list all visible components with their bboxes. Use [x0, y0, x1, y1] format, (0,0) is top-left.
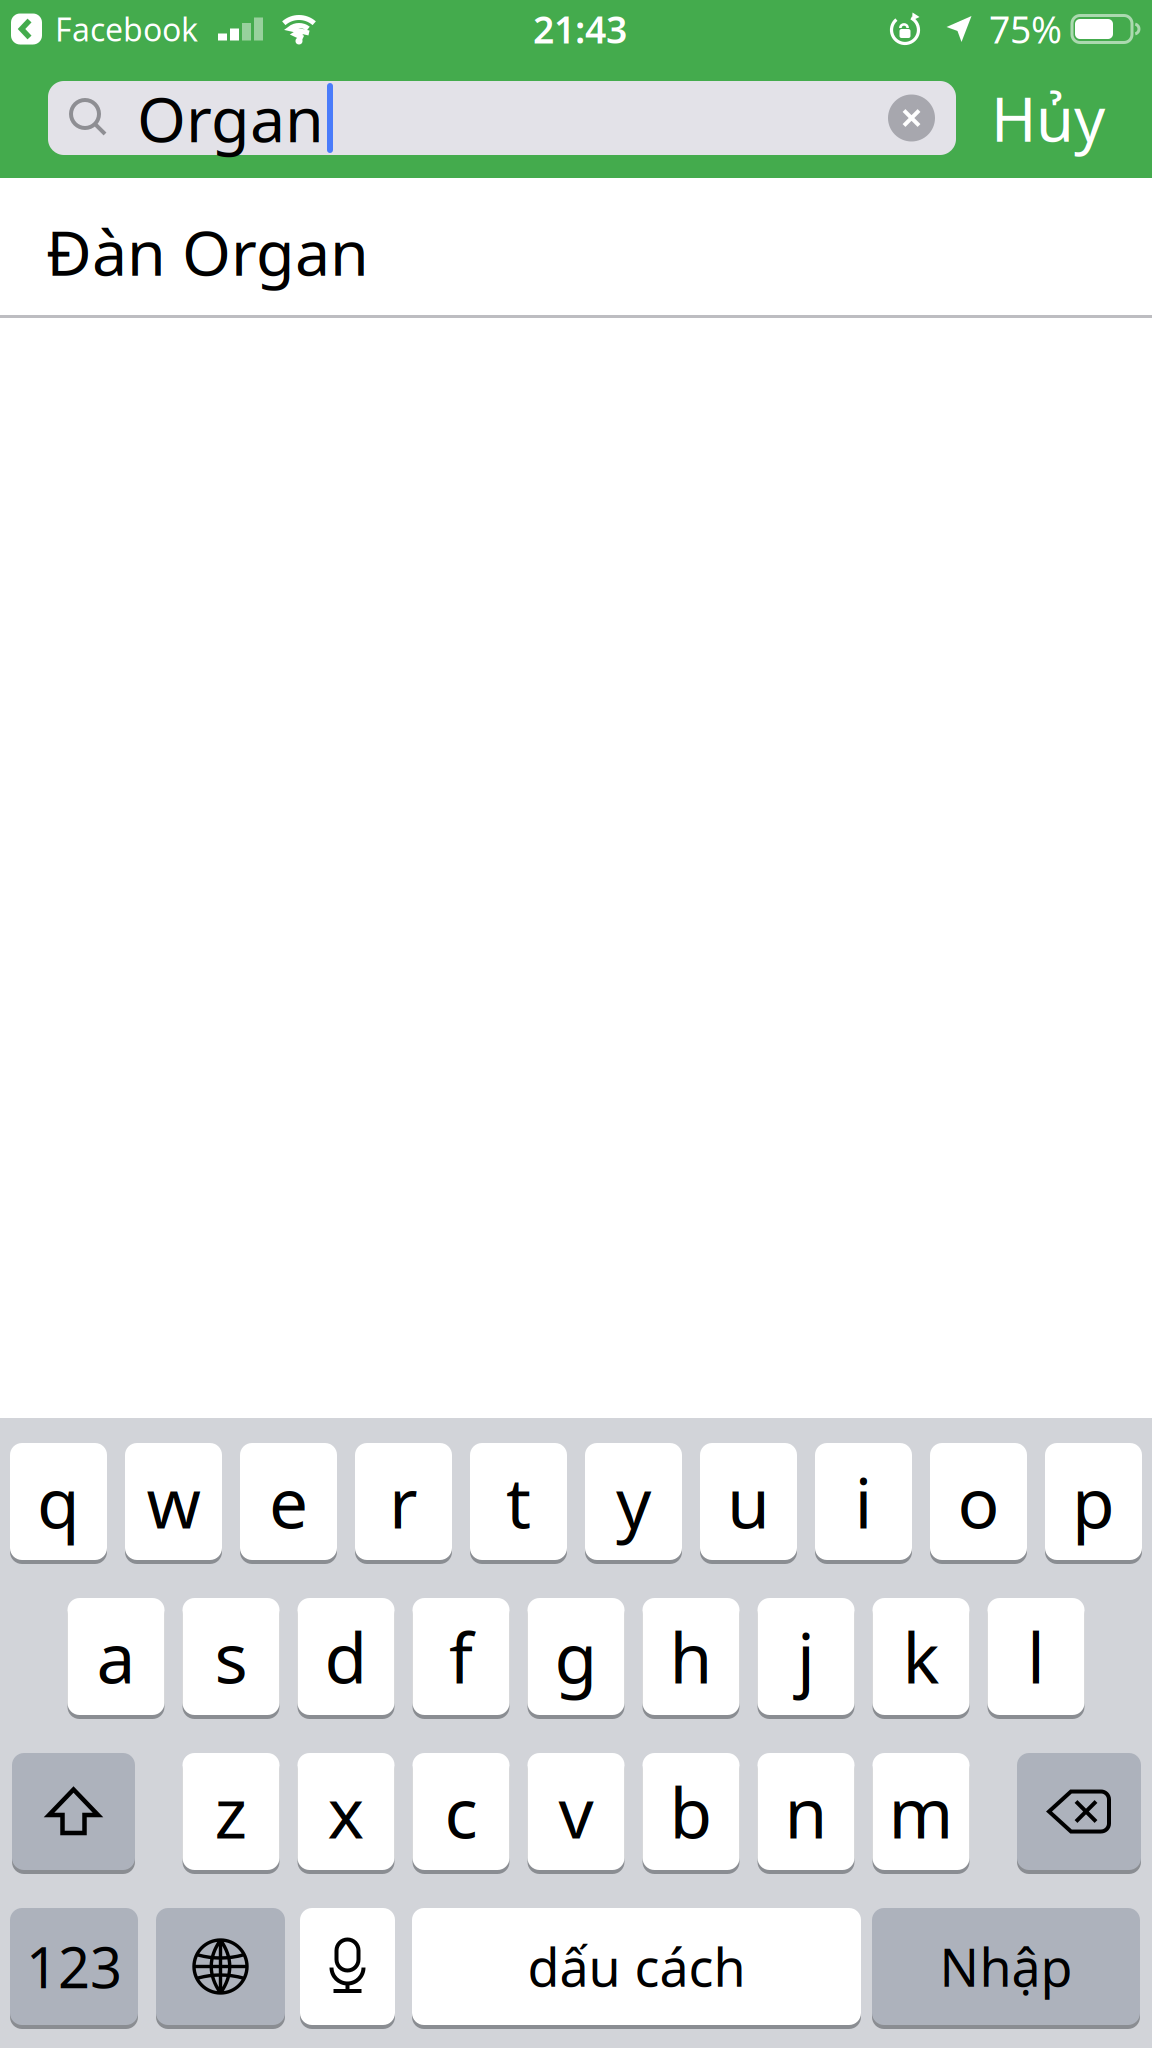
- staticText: b: [669, 1765, 712, 1858]
- button[interactable]: q: [10, 1443, 107, 1560]
- staticText: p: [1072, 1455, 1115, 1548]
- button[interactable]: r: [355, 1443, 452, 1560]
- button[interactable]: b: [642, 1753, 739, 1870]
- button[interactable]: v: [527, 1753, 624, 1870]
- button[interactable]: Clear text: [888, 94, 935, 141]
- staticText: o: [957, 1455, 999, 1548]
- staticText: m: [888, 1765, 953, 1858]
- staticText: r: [389, 1455, 418, 1548]
- button[interactable]: 123: [10, 1908, 138, 2025]
- staticText: h: [669, 1610, 712, 1703]
- staticText: j: [797, 1610, 815, 1703]
- button[interactable]: Hủy: [991, 77, 1105, 159]
- button[interactable]: Shift: [12, 1753, 135, 1870]
- staticText: Hủy: [991, 77, 1105, 159]
- staticText: q: [37, 1455, 80, 1548]
- button[interactable]: m: [872, 1753, 969, 1870]
- staticText: s: [214, 1610, 247, 1703]
- staticText: f: [449, 1610, 473, 1703]
- staticText: Organ: [137, 76, 324, 160]
- staticText: dấu cách: [527, 1932, 745, 2001]
- button[interactable]: Back to Facebook: [11, 8, 198, 50]
- button[interactable]: Đàn Organ: [0, 178, 1152, 318]
- button[interactable]: Next keyboard: [156, 1908, 285, 2025]
- button[interactable]: a: [67, 1598, 164, 1715]
- button[interactable]: j: [757, 1598, 854, 1715]
- staticText: n: [784, 1765, 827, 1858]
- button[interactable]: y: [585, 1443, 682, 1560]
- staticText: d: [324, 1610, 367, 1703]
- staticText: 123: [26, 1929, 122, 2004]
- staticText: c: [444, 1765, 477, 1858]
- staticText: k: [902, 1610, 939, 1703]
- staticText: a: [96, 1610, 135, 1703]
- button[interactable]: o: [930, 1443, 1027, 1560]
- staticText: g: [554, 1610, 597, 1703]
- button[interactable]: Search text field: [48, 81, 956, 155]
- button[interactable]: d: [297, 1598, 394, 1715]
- button[interactable]: s: [182, 1598, 279, 1715]
- staticText: l: [1027, 1610, 1045, 1703]
- button[interactable]: t: [470, 1443, 567, 1560]
- button[interactable]: h: [642, 1598, 739, 1715]
- button[interactable]: n: [757, 1753, 854, 1870]
- button[interactable]: Delete: [1017, 1753, 1141, 1870]
- button[interactable]: i: [815, 1443, 912, 1560]
- button[interactable]: e: [240, 1443, 337, 1560]
- staticText: 75%: [989, 4, 1062, 54]
- button[interactable]: g: [527, 1598, 624, 1715]
- staticText: u: [727, 1455, 770, 1548]
- button[interactable]: w: [125, 1443, 222, 1560]
- staticText: e: [269, 1455, 308, 1548]
- staticText: z: [214, 1765, 247, 1858]
- button[interactable]: l: [987, 1598, 1084, 1715]
- staticText: t: [506, 1455, 531, 1548]
- button[interactable]: p: [1045, 1443, 1142, 1560]
- staticText: x: [327, 1765, 364, 1858]
- staticText: Facebook: [55, 8, 198, 50]
- button[interactable]: c: [412, 1753, 509, 1870]
- button[interactable]: Dictate: [300, 1908, 395, 2025]
- button[interactable]: k: [872, 1598, 969, 1715]
- button[interactable]: z: [182, 1753, 279, 1870]
- staticText: v: [558, 1765, 593, 1858]
- staticText: i: [854, 1455, 872, 1548]
- button[interactable]: Nhập: [872, 1908, 1140, 2025]
- staticText: Nhập: [939, 1932, 1072, 2001]
- button[interactable]: f: [412, 1598, 509, 1715]
- button[interactable]: dấu cách: [412, 1908, 861, 2025]
- staticText: y: [616, 1455, 651, 1548]
- staticText: Đàn Organ: [46, 210, 369, 293]
- button[interactable]: x: [297, 1753, 394, 1870]
- staticText: w: [146, 1455, 200, 1548]
- staticText: 21:43: [533, 4, 627, 54]
- button[interactable]: u: [700, 1443, 797, 1560]
